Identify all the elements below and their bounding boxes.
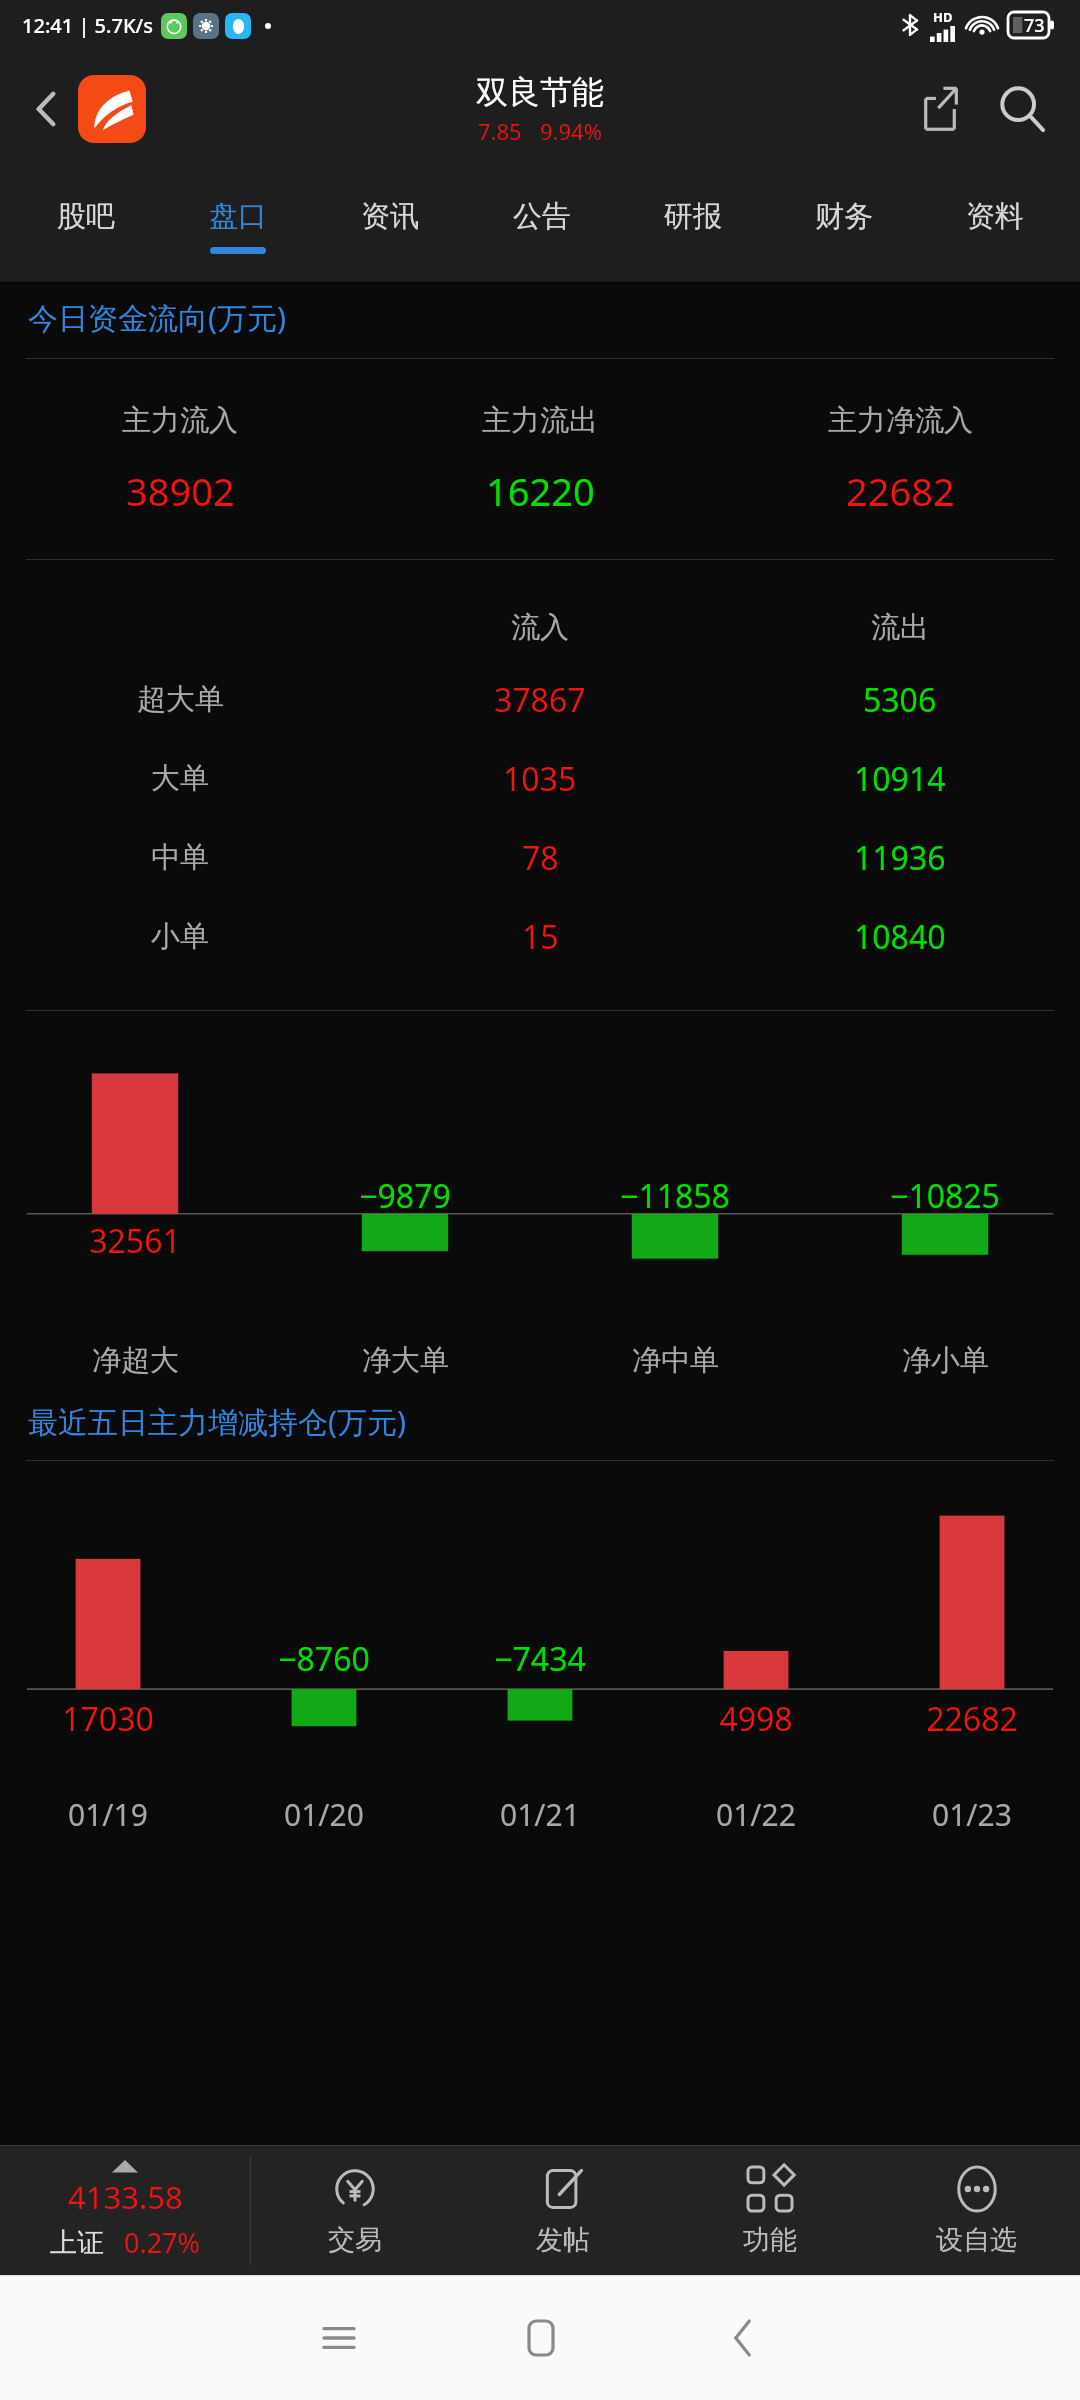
button[interactable]: 公告	[466, 168, 617, 283]
staticText: 净大单	[362, 1342, 449, 1379]
staticText: 5306	[863, 678, 937, 722]
button[interactable]: 盘口	[162, 168, 314, 283]
staticText: 17030	[62, 1697, 154, 1741]
staticText: 01/19	[68, 1794, 148, 1835]
staticText: 22682	[926, 1697, 1018, 1741]
staticText: 今日资金流向(万元)	[28, 297, 286, 338]
staticText: 净中单	[632, 1342, 719, 1379]
button[interactable]: 研报	[617, 168, 768, 283]
staticText: 10914	[854, 757, 946, 801]
staticText: 01/23	[932, 1794, 1012, 1835]
staticText: 财务	[815, 198, 873, 235]
button[interactable]: Share	[908, 77, 972, 141]
staticText: 4133.58	[68, 2176, 183, 2218]
button[interactable]: 功能	[666, 2145, 873, 2275]
button[interactable]: Back	[18, 81, 74, 137]
staticText: 发帖	[536, 2223, 590, 2257]
staticText: 超大单	[137, 681, 224, 718]
button[interactable]: 发帖	[459, 2145, 666, 2275]
staticText: 16220	[486, 465, 595, 517]
staticText: 盘口	[209, 198, 267, 235]
button[interactable]: Home	[440, 2275, 642, 2400]
button[interactable]: 4133.58	[0, 2145, 250, 2275]
staticText: 主力流出	[482, 402, 598, 439]
button[interactable]: 设自选	[873, 2145, 1080, 2275]
button[interactable]: Back	[642, 2275, 844, 2400]
staticText: 01/21	[500, 1794, 580, 1835]
staticText: HD	[933, 8, 953, 26]
staticText: 01/22	[716, 1794, 796, 1835]
button[interactable]: 财务	[768, 168, 919, 283]
staticText: −11858	[620, 1174, 730, 1218]
staticText: 0.27%	[124, 2224, 201, 2261]
staticText: 10840	[854, 915, 946, 959]
staticText: 公告	[513, 198, 571, 235]
staticText: −10825	[890, 1174, 1000, 1218]
staticText: 流入	[511, 609, 569, 646]
button[interactable]: 股吧	[10, 168, 162, 283]
staticText: 1035	[503, 757, 577, 801]
staticText: 38902	[126, 465, 235, 517]
button[interactable]: Search	[986, 73, 1058, 145]
staticText: 研报	[664, 198, 722, 235]
staticText: 净小单	[902, 1342, 989, 1379]
staticText: 22682	[846, 465, 955, 517]
staticText: 主力净流入	[828, 402, 973, 439]
staticText: 01/20	[284, 1794, 364, 1835]
staticText: 上证	[50, 2226, 104, 2260]
staticText: 78	[522, 836, 559, 880]
staticText: 15	[522, 915, 559, 959]
staticText: 32561	[89, 1219, 181, 1263]
staticText: 设自选	[936, 2223, 1017, 2257]
staticText: −8760	[278, 1637, 370, 1681]
staticText: 37867	[494, 678, 586, 722]
staticText: 交易	[328, 2223, 382, 2257]
staticText: −7434	[494, 1637, 586, 1681]
button[interactable]: Recents	[237, 2275, 440, 2400]
button[interactable]: App logo	[78, 75, 146, 143]
staticText: 资料	[966, 198, 1024, 235]
staticText: 9.94%	[540, 116, 602, 146]
staticText: 7.85	[478, 116, 522, 146]
staticText: 资讯	[361, 198, 419, 235]
button[interactable]: 资料	[919, 168, 1070, 283]
staticText: 中单	[151, 839, 209, 876]
staticText: 主力流入	[122, 402, 238, 439]
button[interactable]: 交易	[251, 2145, 459, 2275]
staticText: 4998	[719, 1697, 793, 1741]
staticText: 大单	[151, 760, 209, 797]
staticText: 最近五日主力增减持仓(万元)	[28, 1401, 406, 1442]
button[interactable]: 资讯	[314, 168, 466, 283]
staticText: −9879	[359, 1174, 451, 1218]
staticText: 双良节能	[476, 72, 604, 112]
staticText: 股吧	[57, 198, 115, 235]
staticText: 净超大	[92, 1342, 179, 1379]
staticText: 12:41 | 5.7K/s	[22, 12, 153, 39]
staticText: 小单	[151, 918, 209, 955]
staticText: 73	[1024, 13, 1045, 38]
staticText: 11936	[854, 836, 946, 880]
staticText: 流出	[871, 609, 929, 646]
staticText: 功能	[743, 2223, 797, 2257]
